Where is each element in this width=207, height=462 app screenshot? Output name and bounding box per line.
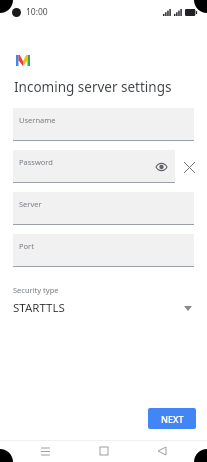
button[interactable]: Port bbox=[13, 234, 194, 267]
button[interactable]: Server bbox=[13, 192, 194, 225]
button[interactable]: Security type bbox=[13, 285, 194, 323]
button[interactable]: Clear password bbox=[180, 158, 198, 176]
button[interactable]: Home bbox=[91, 440, 117, 462]
button[interactable]: Back bbox=[149, 440, 175, 462]
button[interactable]: Password bbox=[13, 150, 175, 183]
staticText: NEXT bbox=[161, 413, 184, 425]
staticText: Password bbox=[19, 157, 53, 167]
button[interactable]: NEXT bbox=[148, 408, 196, 429]
staticText: Port bbox=[19, 241, 34, 251]
staticText: Incoming server settings bbox=[14, 78, 172, 96]
button[interactable]: Recent apps bbox=[32, 440, 58, 462]
staticText: Username bbox=[19, 115, 56, 125]
staticText: STARTTLS bbox=[13, 300, 65, 316]
button[interactable]: Show password bbox=[154, 160, 168, 174]
staticText: Security type bbox=[13, 285, 59, 295]
staticText: Server bbox=[19, 199, 42, 209]
button[interactable]: Username bbox=[13, 108, 194, 141]
staticText: 10:00 bbox=[26, 6, 48, 18]
